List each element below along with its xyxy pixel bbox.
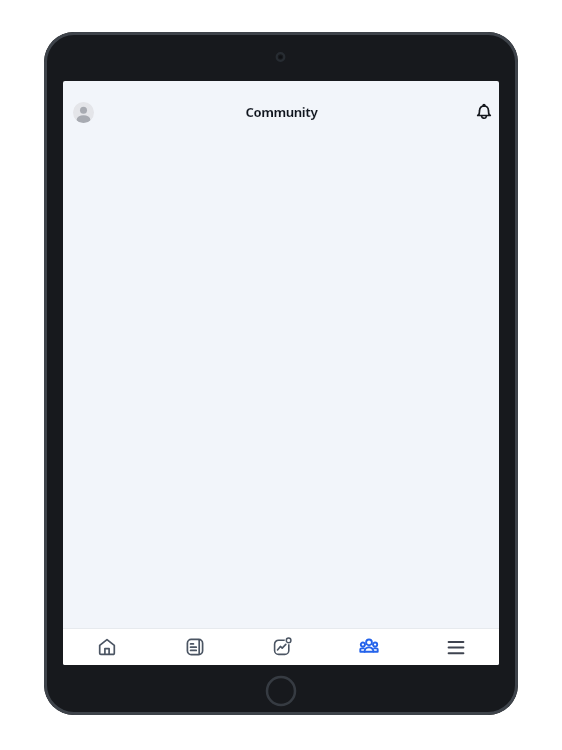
button[interactable] — [73, 102, 94, 123]
button[interactable] — [412, 629, 499, 665]
button[interactable] — [238, 629, 325, 665]
button[interactable] — [151, 629, 238, 665]
button[interactable] — [63, 629, 151, 665]
button[interactable] — [474, 102, 494, 122]
staticText: Community — [245, 103, 318, 121]
button[interactable] — [325, 629, 412, 665]
